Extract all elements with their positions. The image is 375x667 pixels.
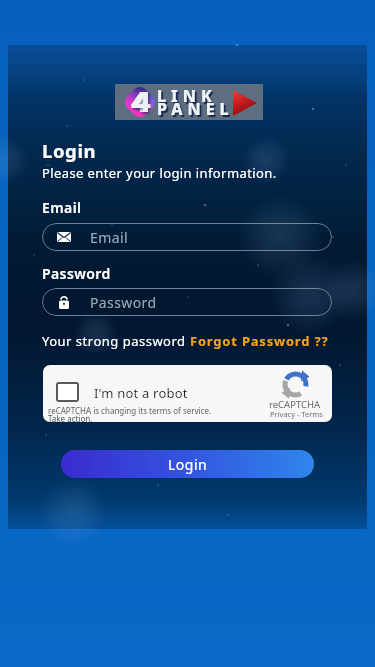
staticText: 4	[131, 81, 148, 115]
staticText: Password	[90, 293, 157, 312]
staticText: Email	[90, 228, 128, 247]
staticText: LINK	[157, 85, 217, 107]
button[interactable]: Password	[42, 288, 332, 316]
staticText: reCAPTCHA is changing its terms of servi…	[48, 405, 212, 416]
staticText: Your strong password	[42, 332, 190, 350]
staticText: reCAPTCHA	[269, 398, 321, 411]
button[interactable]: Forgot Password ??	[190, 332, 329, 350]
staticText: Please enter your login information.	[42, 164, 277, 182]
staticText: Login	[168, 455, 208, 474]
staticText: I'm not a robot	[94, 384, 188, 402]
staticText: PANEL	[157, 98, 234, 120]
button[interactable]: Email	[42, 223, 332, 251]
button[interactable]: Take action.	[48, 413, 93, 422]
button[interactable]	[56, 382, 79, 402]
staticText: Privacy - Terms	[270, 409, 323, 419]
staticText: Email	[42, 198, 82, 217]
staticText: Password	[42, 264, 111, 283]
button[interactable]: Login	[61, 450, 314, 478]
staticText: Login	[42, 138, 97, 163]
staticText: 4	[134, 81, 151, 115]
